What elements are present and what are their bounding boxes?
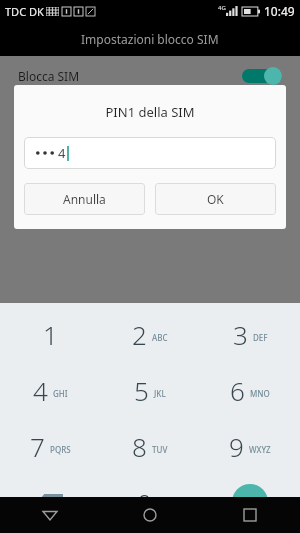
staticText: PIN1 della SIM [14,103,286,121]
button[interactable]: Recents [200,497,300,533]
staticText: OK [207,191,224,207]
button[interactable]: 8 [100,418,200,474]
button[interactable]: 2 [100,307,200,362]
button[interactable]: 9 [200,418,300,474]
staticText: PQRS [50,444,71,455]
button[interactable]: Home [100,497,200,533]
button[interactable]: 4 [24,137,276,169]
staticText: 5 [134,373,149,408]
staticText: 2 [132,317,147,352]
staticText: MNO [250,388,270,399]
staticText: 6 [230,373,245,408]
staticText: JKL [154,388,166,399]
staticText: Impostazioni blocco SIM [81,31,219,47]
button[interactable]: 0 [100,474,200,530]
staticText: 7 [30,429,45,464]
button[interactable]: 7 [0,418,100,474]
button[interactable]: 6 [200,362,300,418]
staticText: TDC DK [5,4,44,19]
staticText: 4G [218,4,226,12]
staticText: 3 [233,317,248,352]
button[interactable]: 3 [200,307,300,362]
staticText: 0 [137,485,152,520]
staticText: Blocca SIM [18,68,80,84]
staticText: GHI [53,388,68,399]
staticText: Annulla [63,191,106,207]
button[interactable]: 1 [0,307,100,362]
staticText: TUV [152,444,168,455]
staticText: ABC [152,332,168,343]
staticText: 10:49 [264,3,295,19]
staticText: 9 [229,429,244,464]
staticText: DEF [253,332,268,343]
staticText: 4 [33,373,48,408]
button[interactable]: Backspace [0,474,100,530]
button[interactable] [242,67,282,85]
staticText: 1 [43,317,58,352]
button[interactable]: OK [155,183,276,215]
button[interactable]: Back [0,497,100,533]
button[interactable]: Confirm [200,474,300,530]
staticText: WXYZ [249,444,271,455]
button[interactable]: Annulla [24,183,145,215]
button[interactable]: 5 [100,362,200,418]
staticText: 8 [132,429,147,464]
staticText: 4 [58,144,66,162]
button[interactable]: 4 [0,362,100,418]
